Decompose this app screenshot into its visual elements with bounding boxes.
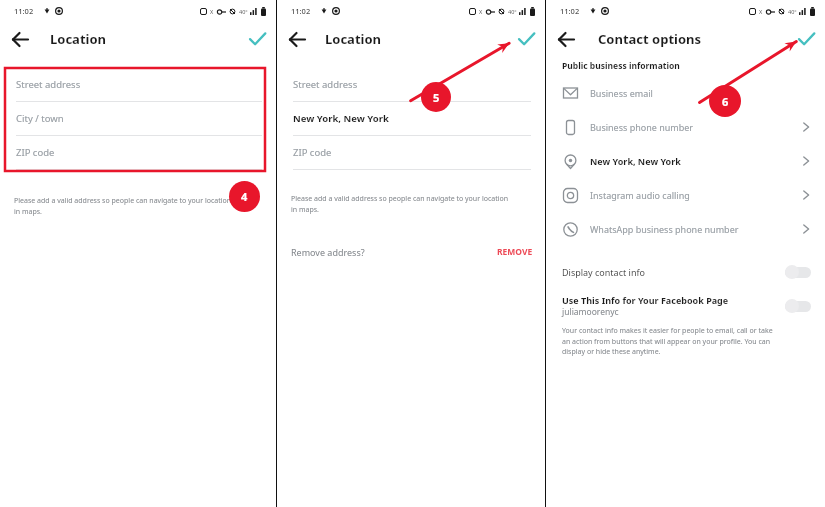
button[interactable]: Street address xyxy=(0,68,276,102)
staticText: New York, New York xyxy=(590,155,681,167)
button[interactable]: Back xyxy=(551,24,581,54)
staticText: 40° xyxy=(788,8,797,15)
staticText: Street address xyxy=(16,78,81,91)
staticText: 11:02 xyxy=(14,6,34,16)
button[interactable]: Instagram audio calling xyxy=(546,178,825,212)
button[interactable]: Done xyxy=(242,24,272,54)
button[interactable]: Done xyxy=(511,24,541,54)
button[interactable]: Use This Info for Your Facebook Page xyxy=(546,294,825,318)
staticText: 11:02 xyxy=(560,6,580,16)
staticText: Location xyxy=(50,30,106,48)
button[interactable]: Back xyxy=(282,24,312,54)
staticText: Your contact info makes it easier for pe… xyxy=(562,326,773,356)
button[interactable]: Toggle xyxy=(785,299,811,313)
staticText: 11:02 xyxy=(291,6,311,16)
staticText: 40° xyxy=(239,8,248,15)
staticText: X xyxy=(759,8,763,15)
staticText: X xyxy=(210,8,214,15)
staticText: Please add a valid address so people can… xyxy=(14,196,232,216)
button[interactable]: City / town xyxy=(0,102,276,136)
staticText: City / town xyxy=(16,112,64,125)
button[interactable]: Business email xyxy=(546,76,825,110)
staticText: ZIP code xyxy=(293,146,332,159)
staticText: Contact options xyxy=(598,30,702,48)
button[interactable]: Business phone number xyxy=(546,110,825,144)
button[interactable]: Toggle xyxy=(785,265,811,279)
staticText: Business phone number xyxy=(590,121,694,133)
staticText: Remove address? xyxy=(291,246,365,258)
staticText: ZIP code xyxy=(16,146,55,159)
button[interactable]: New York, New York xyxy=(277,102,545,136)
staticText: Use This Info for Your Facebook Page xyxy=(562,294,729,306)
button[interactable]: Remove address? xyxy=(277,246,545,258)
staticText: Instagram audio calling xyxy=(590,189,690,201)
staticText: juliamoorenyc xyxy=(562,306,619,318)
staticText: REMOVE xyxy=(497,246,533,258)
staticText: 40° xyxy=(508,8,517,15)
staticText: X xyxy=(479,8,483,15)
button[interactable]: Street address xyxy=(277,68,545,102)
staticText: Display contact info xyxy=(562,266,645,278)
staticText: Street address xyxy=(293,78,358,91)
staticText: Location xyxy=(325,30,381,48)
button[interactable]: Back xyxy=(5,24,35,54)
staticText: New York, New York xyxy=(293,112,389,125)
staticText: 6 xyxy=(722,94,729,109)
button[interactable]: ZIP code xyxy=(277,136,545,170)
button[interactable]: WhatsApp business phone number xyxy=(546,212,825,246)
staticText: Please add a valid address so people can… xyxy=(291,194,509,214)
button[interactable]: Display contact info xyxy=(546,260,825,284)
staticText: WhatsApp business phone number xyxy=(590,223,739,235)
button[interactable]: ZIP code xyxy=(0,136,276,170)
staticText: 4 xyxy=(241,189,248,204)
staticText: Business email xyxy=(590,87,653,99)
staticText: Public business information xyxy=(562,60,680,72)
staticText: 5 xyxy=(433,90,440,105)
button[interactable]: Done xyxy=(791,24,821,54)
button[interactable]: New York, New York xyxy=(546,144,825,178)
